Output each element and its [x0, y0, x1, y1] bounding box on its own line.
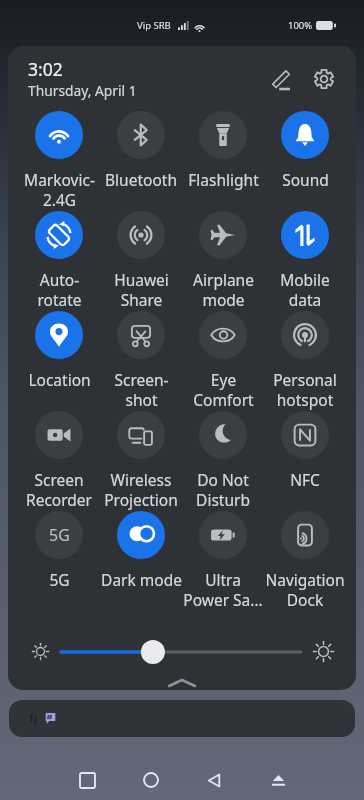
staticText: Thursday, April 1 [28, 81, 137, 100]
button[interactable]: Do Not Disturb [182, 411, 264, 511]
staticText: Vip SRB [137, 19, 171, 32]
staticText: Sound [282, 169, 329, 190]
button[interactable]: Location [18, 311, 100, 411]
staticText: Wireless Projection [104, 469, 178, 510]
staticText: 5G [49, 524, 70, 546]
staticText: Dark mode [101, 569, 182, 590]
button[interactable]: Eye Comfort [182, 311, 264, 411]
button[interactable]: Sound [264, 111, 346, 211]
button[interactable]: 5G [18, 511, 100, 611]
button[interactable]: Airplane mode [182, 211, 264, 311]
button[interactable] [9, 700, 355, 737]
staticText: Screen Recorder [26, 469, 92, 510]
button[interactable]: Home [131, 764, 171, 796]
staticText: Personal hotspot [273, 369, 337, 410]
staticText: Mobile data [280, 269, 330, 310]
staticText: Auto- rotate [37, 269, 82, 310]
staticText: Eye Comfort [193, 369, 254, 410]
staticText: Screen- shot [114, 369, 169, 410]
button[interactable]: Mobile data [264, 211, 346, 311]
button[interactable] [61, 638, 301, 666]
button[interactable]: Personal hotspot [264, 311, 346, 411]
button[interactable]: Back [194, 764, 234, 796]
staticText: Bluetooth [105, 169, 177, 190]
staticText: Do Not Disturb [196, 469, 250, 510]
button[interactable]: Ultra Power Sa... [182, 511, 264, 611]
button[interactable]: Screen- shot [100, 311, 182, 411]
button[interactable]: Dark mode [100, 511, 182, 611]
button[interactable]: Wireless Projection [100, 411, 182, 511]
staticText: 5G [49, 569, 70, 590]
button[interactable]: Flashlight [182, 111, 264, 211]
button[interactable]: Hide navigation bar [258, 764, 298, 796]
staticText: 3:02 [28, 57, 63, 81]
staticText: Flashlight [188, 169, 259, 190]
staticText: NFC [290, 469, 320, 490]
staticText: Ultra Power Sa... [183, 569, 263, 610]
button[interactable]: Auto- rotate [18, 211, 100, 311]
staticText: Navigation Dock [265, 569, 345, 610]
button[interactable]: Bluetooth [100, 111, 182, 211]
staticText: Huawei Share [114, 269, 169, 310]
staticText: Airplane mode [193, 269, 254, 310]
staticText: 100% [288, 19, 313, 32]
button[interactable]: Screen Recorder [18, 411, 100, 511]
button[interactable]: Huawei Share [100, 211, 182, 311]
button[interactable]: Settings [306, 61, 342, 97]
button[interactable]: Recent apps [67, 764, 107, 796]
staticText: Markovic- 2.4G [24, 169, 95, 210]
button[interactable]: Markovic- 2.4G [18, 111, 100, 211]
staticText: Location [28, 369, 91, 390]
button[interactable]: Edit quick settings [262, 61, 298, 97]
button[interactable]: NFC [264, 411, 346, 511]
button[interactable]: Navigation Dock [264, 511, 346, 611]
